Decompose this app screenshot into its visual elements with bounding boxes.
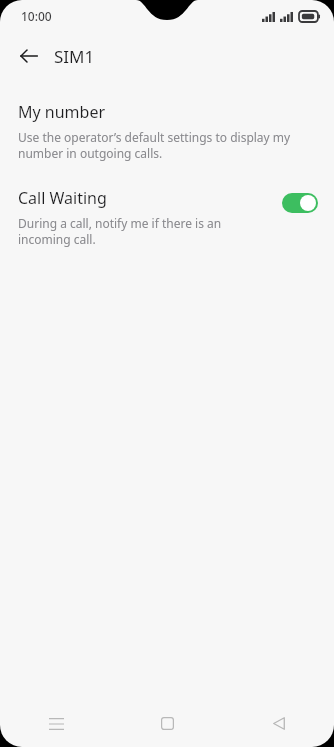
staticText: 10:00	[21, 8, 52, 24]
staticText: Use the operator’s default settings to d…	[18, 129, 316, 161]
button[interactable]: Home	[112, 700, 223, 747]
button[interactable]: Back	[223, 700, 334, 747]
staticText: During a call, notify me if there is an …	[18, 215, 243, 247]
staticText: SIM1	[54, 45, 95, 68]
button[interactable]: Call Waiting	[0, 187, 334, 247]
button[interactable]: My number	[0, 99, 334, 163]
staticText: Call Waiting	[18, 187, 107, 209]
button[interactable]: Recent apps	[0, 700, 112, 747]
button[interactable]: Back	[15, 42, 43, 70]
staticText: My number	[18, 101, 106, 123]
button[interactable]: Call Waiting toggle	[282, 193, 318, 213]
